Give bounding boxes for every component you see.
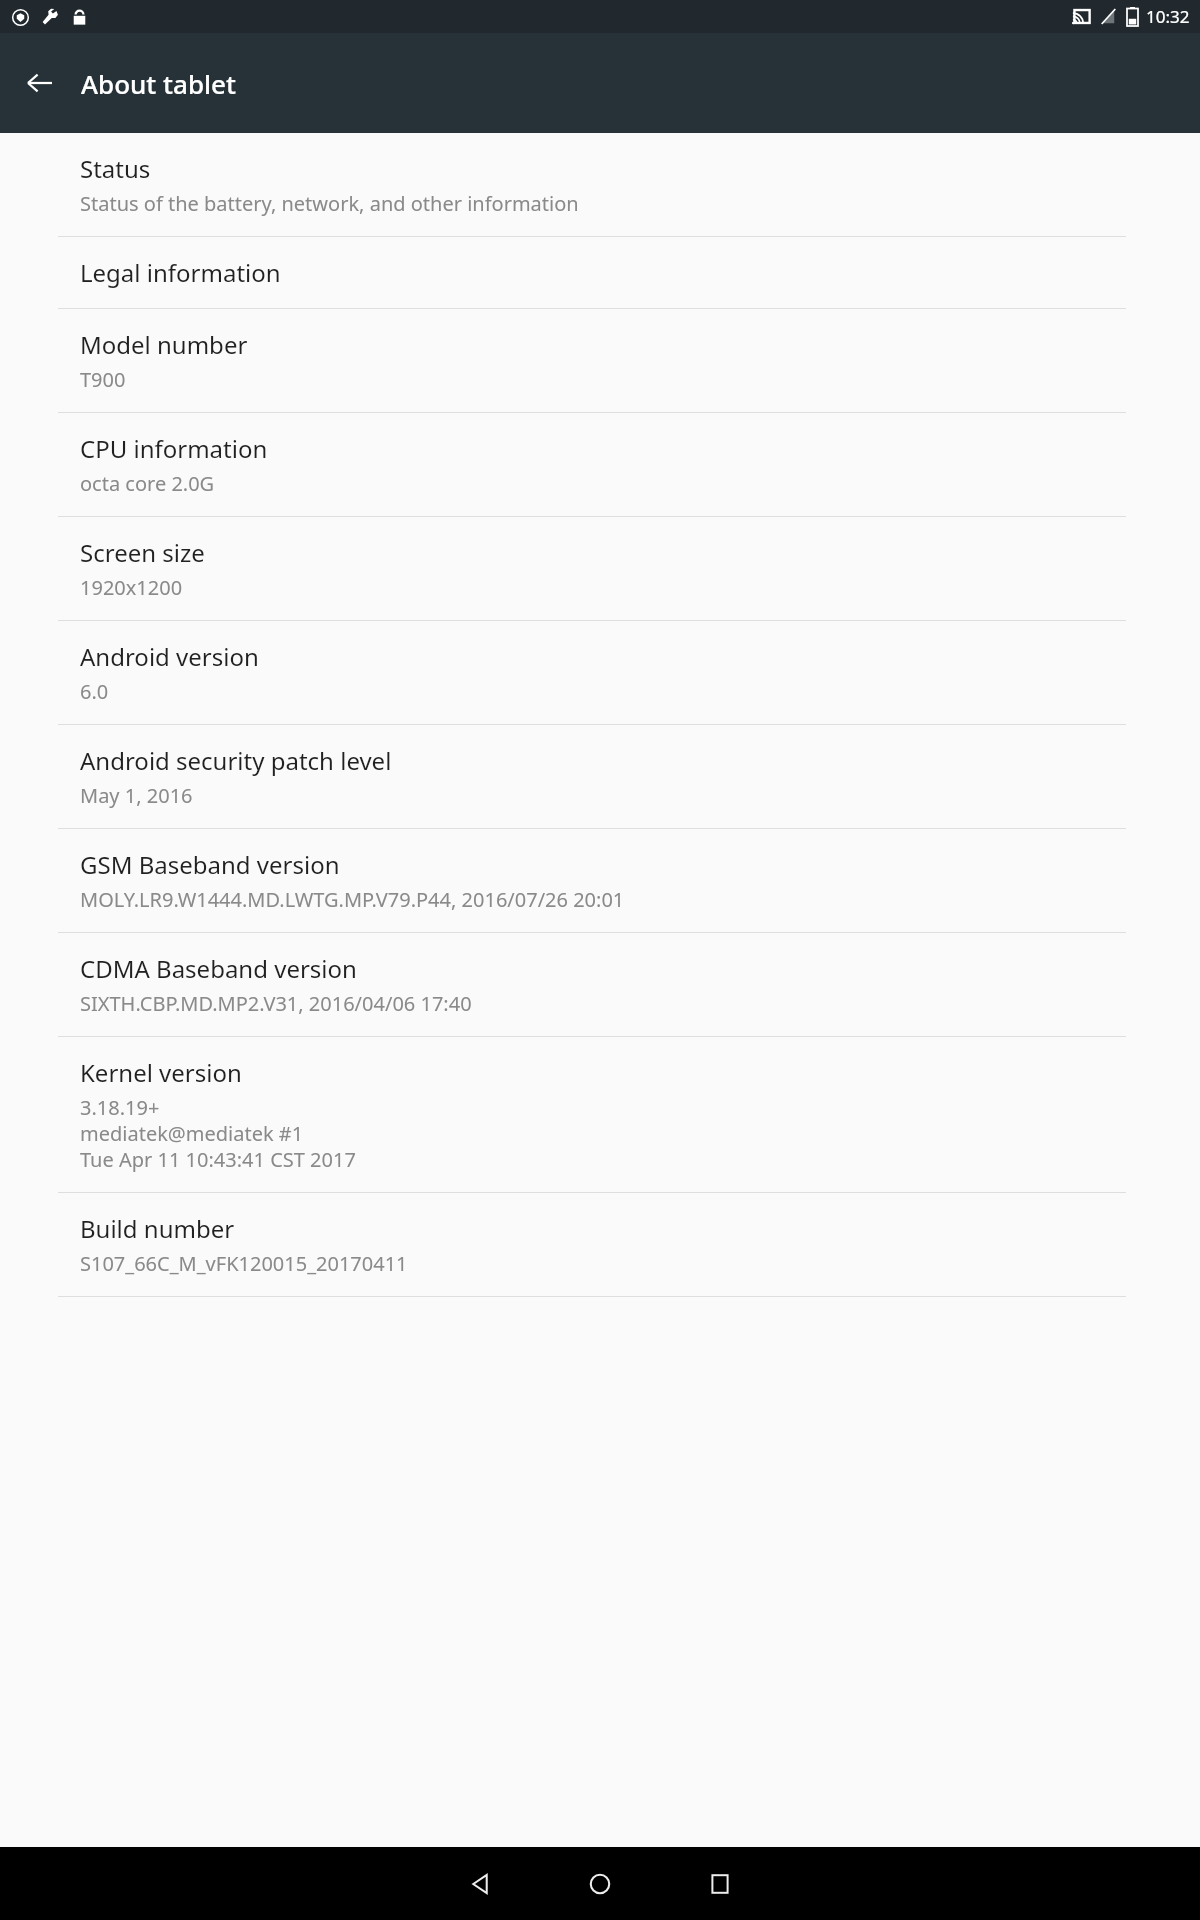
staticText: Build number [80,1212,235,1245]
button[interactable]: Android version [0,621,1200,724]
button[interactable]: Back [12,55,68,111]
staticText: SIXTH.CBP.MD.MP2.V31, 2016/04/06 17:40 [80,990,472,1017]
button[interactable]: Recent apps [684,1848,756,1920]
button[interactable]: GSM Baseband version [0,829,1200,932]
staticText: About tablet [81,66,236,101]
button[interactable]: Legal information [0,237,1200,308]
button[interactable]: Status [0,133,1200,236]
staticText: Model number [80,328,248,361]
staticText: Android security patch level [80,744,392,777]
staticText: 10:32 [1146,5,1190,28]
staticText: GSM Baseband version [80,848,340,881]
staticText: octa core 2.0G [80,470,215,497]
button[interactable]: Build number [0,1193,1200,1296]
staticText: CDMA Baseband version [80,952,357,985]
staticText: May 1, 2016 [80,782,193,809]
staticText: 6.0 [80,678,109,705]
staticText: Legal information [80,256,281,289]
button[interactable]: Back [444,1848,516,1920]
staticText: Status of the battery, network, and othe… [80,190,579,217]
staticText: Status [80,152,151,185]
button[interactable]: CPU information [0,413,1200,516]
button[interactable]: Home [564,1848,636,1920]
staticText: MOLY.LR9.W1444.MD.LWTG.MP.V79.P44, 2016/… [80,886,625,913]
staticText: Android version [80,640,259,673]
button[interactable]: Model number [0,309,1200,412]
staticText: 3.18.19+ mediatek@mediatek #1 Tue Apr 11… [80,1094,356,1173]
staticText: Kernel version [80,1056,242,1089]
staticText: T900 [80,366,126,393]
button[interactable]: Android security patch level [0,725,1200,828]
staticText: CPU information [80,432,268,465]
button[interactable]: CDMA Baseband version [0,933,1200,1036]
staticText: S107_66C_M_vFK120015_20170411 [80,1250,408,1277]
button[interactable]: Kernel version [0,1037,1200,1192]
button[interactable]: Screen size [0,517,1200,620]
staticText: 1920x1200 [80,574,183,601]
staticText: Screen size [80,536,205,569]
